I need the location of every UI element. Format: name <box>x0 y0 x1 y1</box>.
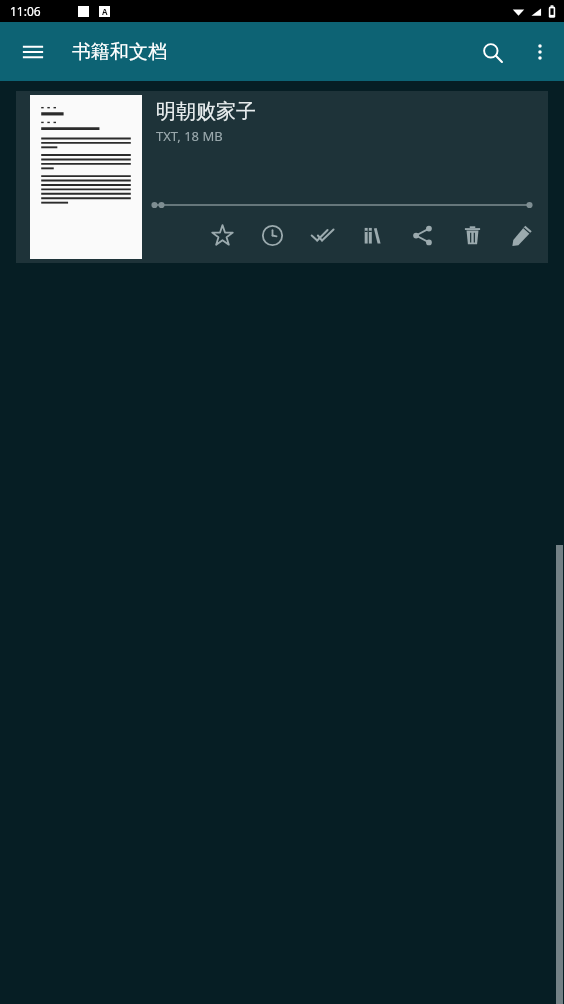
staticText: 明朝败家子 <box>156 99 256 124</box>
button[interactable]: Open navigation drawer <box>10 29 56 75</box>
button[interactable]: Recent <box>252 215 292 255</box>
button[interactable]: Add to library <box>352 215 392 255</box>
staticText: 11:06 <box>10 3 41 19</box>
button[interactable]: Search <box>468 28 516 76</box>
button[interactable]: Favorite <box>202 215 242 255</box>
staticText: A <box>102 6 108 17</box>
button[interactable]: Edit <box>502 215 542 255</box>
button[interactable]: Share <box>402 215 442 255</box>
staticText: 书籍和文档 <box>72 40 167 64</box>
button[interactable]: 明朝败家子 <box>16 91 548 263</box>
button[interactable]: More options <box>516 28 564 76</box>
staticText: TXT, 18 MB <box>156 127 223 145</box>
button[interactable]: Delete <box>452 215 492 255</box>
button[interactable]: Mark as read <box>302 215 342 255</box>
